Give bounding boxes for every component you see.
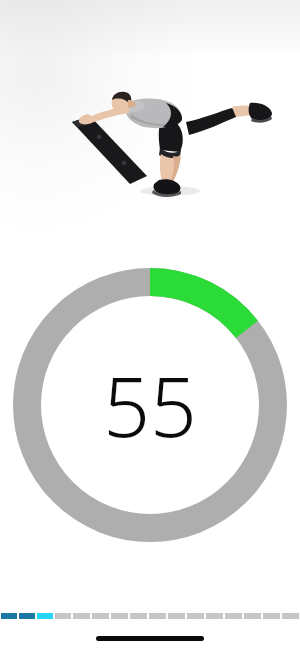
- staticText: 55: [103, 349, 197, 461]
- button[interactable]: Workout progress, exercise 3 of 16: [0, 613, 300, 619]
- button[interactable]: Timer, 55 seconds remaining: [13, 268, 287, 542]
- button[interactable]: Exercise demonstration video: [0, 0, 300, 240]
